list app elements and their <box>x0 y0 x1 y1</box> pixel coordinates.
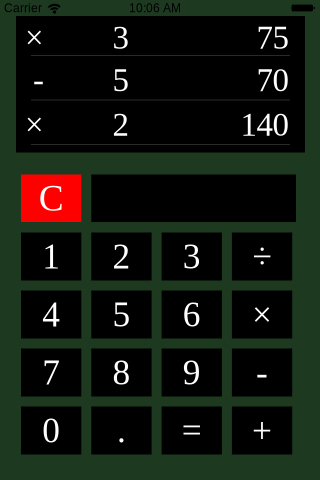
staticText: C <box>39 178 64 219</box>
button[interactable]: - <box>232 348 292 396</box>
staticText: - <box>33 62 44 98</box>
staticText: 0 <box>42 411 60 450</box>
button[interactable]: 8 <box>91 348 152 396</box>
staticText: 8 <box>112 353 130 392</box>
staticText: 3 <box>112 19 128 56</box>
button[interactable]: 2 <box>91 232 152 280</box>
button[interactable]: 9 <box>162 348 222 396</box>
staticText: 2 <box>112 237 130 276</box>
staticText: 70 <box>256 62 288 98</box>
button[interactable]: 3 <box>162 232 222 280</box>
button[interactable]: 7 <box>21 348 81 396</box>
staticText: × <box>252 295 272 334</box>
button[interactable]: × <box>232 290 292 338</box>
staticText: × <box>25 106 44 143</box>
staticText: 4 <box>42 295 60 334</box>
button[interactable]: 4 <box>21 290 81 338</box>
staticText: × <box>25 19 44 56</box>
staticText: 9 <box>183 353 201 392</box>
staticText: + <box>252 411 272 450</box>
staticText: = <box>182 411 202 450</box>
staticText: 7 <box>42 353 60 392</box>
staticText: 5 <box>112 295 130 334</box>
button[interactable]: 5 <box>91 290 152 338</box>
button[interactable]: ÷ <box>232 232 292 280</box>
staticText: 75 <box>256 19 288 56</box>
staticText: . <box>117 411 126 450</box>
button[interactable]: . <box>91 406 152 454</box>
staticText: Carrier <box>4 1 42 15</box>
button[interactable]: 1 <box>21 232 81 280</box>
staticText: 1 <box>42 237 60 276</box>
staticText: ÷ <box>252 237 271 276</box>
button[interactable]: C <box>21 174 81 222</box>
button[interactable]: + <box>232 406 292 454</box>
staticText: 2 <box>112 106 128 143</box>
button[interactable]: 0 <box>21 406 81 454</box>
staticText: 140 <box>240 106 288 143</box>
button[interactable]: = <box>162 406 222 454</box>
staticText: - <box>256 353 268 392</box>
staticText: 5 <box>112 62 128 98</box>
staticText: 10:06 AM <box>129 1 181 15</box>
staticText: 3 <box>183 237 201 276</box>
staticText: 6 <box>183 295 201 334</box>
button[interactable]: 6 <box>162 290 222 338</box>
